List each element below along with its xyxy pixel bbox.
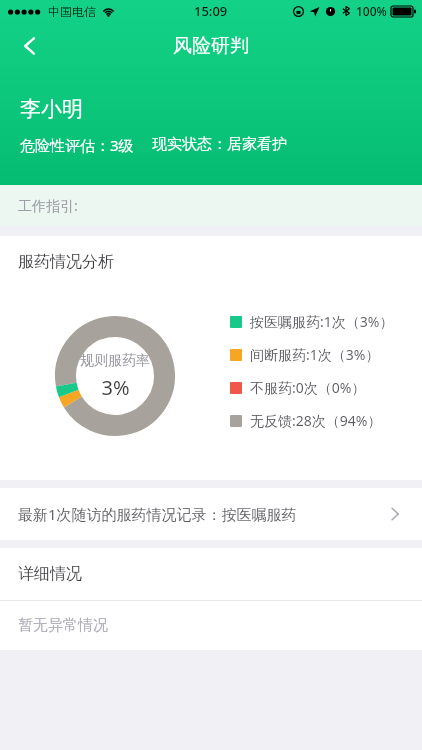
staticText: 最新1次随访的服药情况记录：按医嘱服药 [18,504,386,524]
staticText: 规则服药率 [80,352,150,370]
staticText: 风险研判 [173,34,249,58]
staticText: 服药情况分析 [18,252,114,272]
staticText: 现实状态：居家看护 [152,135,287,154]
staticText: 100% [356,3,387,19]
staticText: 不服药:0次（0%） [250,378,366,397]
staticText: 间断服药:1次（3%） [250,345,380,364]
staticText: 中国电信 [48,4,96,19]
staticText: 暂无异常情况 [18,616,108,635]
button[interactable]: Back [6,22,54,70]
staticText: 无反馈:28次（94%） [250,411,382,430]
staticText: 按医嘱服药:1次（3%） [250,312,394,331]
staticText: 详细情况 [18,564,82,584]
button[interactable]: 最新1次随访的服药情况记录：按医嘱服药 [0,488,422,540]
staticText: 工作指引: [18,196,78,215]
staticText: 李小明 [20,96,83,122]
staticText: 3% [101,374,130,401]
staticText: 15:09 [194,2,228,20]
staticText: 危险性评估：3级 [20,135,134,155]
